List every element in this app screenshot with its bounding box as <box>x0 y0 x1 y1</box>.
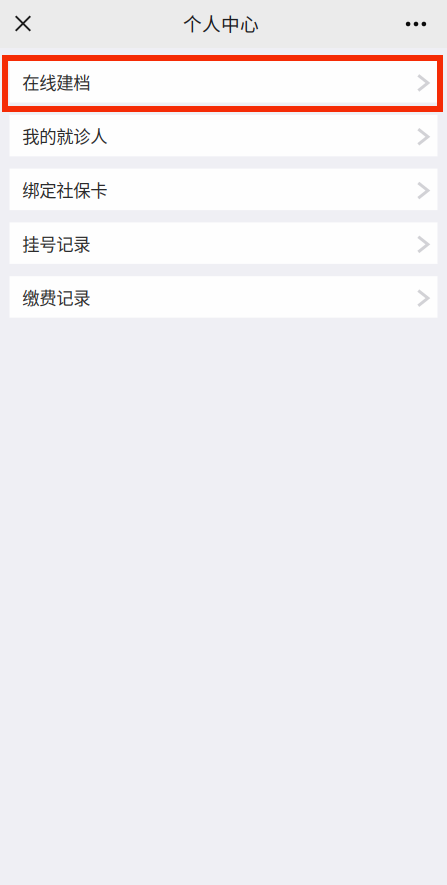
button[interactable]: 在线建档 <box>9 61 437 102</box>
button[interactable]: Close <box>0 0 46 48</box>
staticText: 个人中心 <box>183 9 259 36</box>
button[interactable]: 绑定社保卡 <box>9 169 437 210</box>
staticText: 绑定社保卡 <box>22 177 107 202</box>
staticText: 挂号记录 <box>22 231 90 256</box>
button[interactable]: 我的就诊人 <box>9 115 437 156</box>
staticText: 在线建档 <box>22 69 90 94</box>
button[interactable]: More options <box>385 0 447 48</box>
staticText: 我的就诊人 <box>22 123 107 148</box>
button[interactable]: 挂号记录 <box>9 222 437 264</box>
staticText: 缴费记录 <box>22 284 90 309</box>
button[interactable]: 缴费记录 <box>9 276 437 318</box>
